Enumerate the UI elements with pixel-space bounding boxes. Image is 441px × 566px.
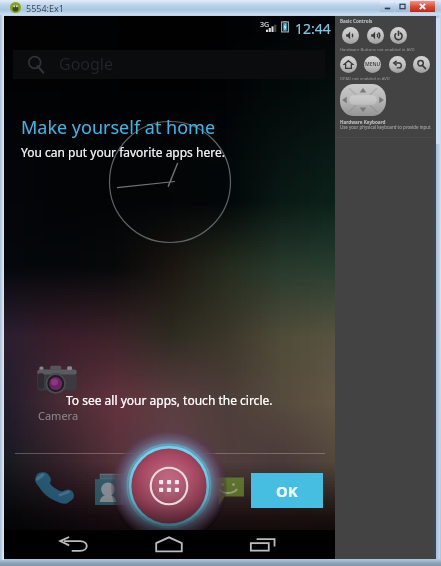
button[interactable]: Volume down: [342, 27, 359, 44]
button[interactable]: Recent apps: [247, 536, 279, 553]
button[interactable]: MENU: [364, 56, 381, 73]
button[interactable]: Google: [13, 50, 325, 79]
button[interactable]: Directional pad: [340, 84, 386, 116]
staticText: 12:44: [295, 19, 331, 38]
staticText: Make yourself at home: [21, 115, 216, 140]
staticText: 3G: [260, 20, 270, 30]
staticText: 5554:Ex1: [26, 2, 64, 14]
staticText: Google: [59, 53, 114, 75]
button[interactable]: All apps: [111, 428, 227, 544]
button[interactable]: Phone: [32, 470, 78, 507]
button[interactable]: People: [95, 473, 129, 507]
button[interactable]: Back: [57, 536, 89, 553]
button[interactable]: Home: [153, 536, 185, 553]
button[interactable]: Close: [410, 1, 435, 12]
button[interactable]: Search: [413, 56, 430, 73]
staticText: DPAD not enabled in AVD: [340, 76, 390, 82]
button[interactable]: Volume up: [367, 27, 384, 44]
staticText: Use your physical keyboard to provide in…: [340, 124, 431, 130]
staticText: OK: [276, 481, 298, 501]
button[interactable]: Back: [389, 56, 406, 73]
staticText: To see all your apps, touch the circle.: [66, 392, 273, 408]
staticText: Hardware Keyboard: [340, 119, 386, 125]
button[interactable]: Minimize: [380, 1, 394, 12]
button[interactable]: Camera: [34, 361, 84, 419]
staticText: You can put your favorite apps here.: [21, 144, 225, 160]
staticText: Camera: [38, 408, 79, 423]
button[interactable]: Home: [340, 56, 357, 73]
button[interactable]: Maximize: [395, 1, 409, 12]
button[interactable]: Messaging: [211, 472, 245, 507]
staticText: MENU: [365, 61, 381, 68]
button[interactable]: OK: [251, 473, 323, 508]
button[interactable]: Power: [390, 27, 407, 44]
staticText: Hardware Buttons not enabled in AVD: [340, 47, 415, 53]
staticText: Basic Controls: [340, 18, 373, 24]
